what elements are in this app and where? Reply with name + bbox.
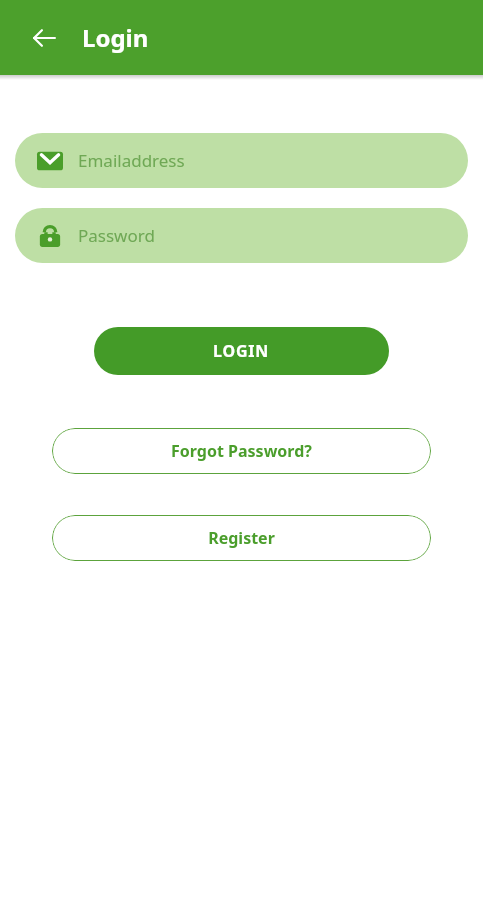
staticText: Register [208, 527, 275, 549]
button[interactable]: Password [15, 208, 468, 263]
button[interactable]: Email [15, 133, 468, 188]
staticText: Forgot Password? [171, 440, 312, 462]
button[interactable]: Forgot Password? [52, 428, 431, 474]
button[interactable]: LOGIN [94, 327, 389, 375]
staticText: LOGIN [213, 340, 270, 362]
button[interactable]: Register [52, 515, 431, 561]
staticText: Password [78, 224, 155, 247]
button[interactable]: Back [22, 16, 66, 60]
staticText: Login [82, 21, 149, 54]
staticText: Emailaddress [78, 149, 185, 172]
